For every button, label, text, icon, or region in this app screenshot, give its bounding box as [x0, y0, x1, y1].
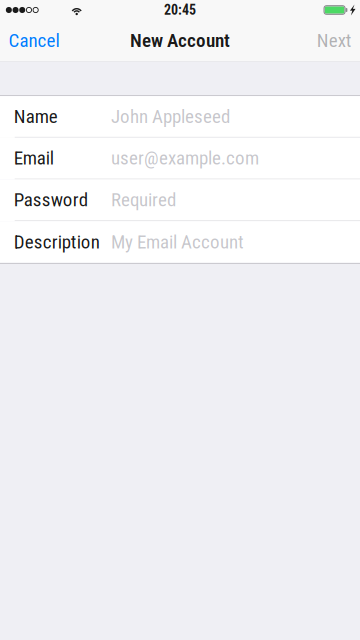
staticText: Cancel: [8, 29, 59, 52]
staticText: Description: [14, 231, 100, 253]
staticText: New Account: [130, 29, 230, 52]
button[interactable]: Description: [0, 221, 360, 263]
staticText: Email: [14, 147, 54, 169]
button[interactable]: Password: [0, 179, 360, 221]
button[interactable]: Cancel: [0, 20, 69, 61]
staticText: My Email Account: [111, 231, 244, 253]
staticText: John Appleseed: [111, 105, 230, 128]
staticText: Password: [14, 189, 88, 211]
staticText: Name: [14, 105, 58, 128]
button[interactable]: Name: [0, 96, 360, 138]
staticText: Next: [317, 29, 352, 52]
button[interactable]: Next: [307, 20, 360, 61]
staticText: user@example.com: [111, 147, 259, 169]
button[interactable]: Email: [0, 138, 360, 179]
staticText: 20:45: [164, 2, 196, 18]
staticText: Required: [111, 189, 176, 211]
